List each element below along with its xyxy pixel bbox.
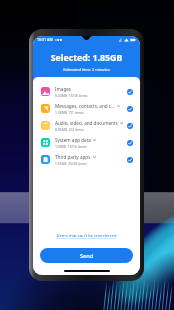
button[interactable]: Audio, video, and documents (33, 117, 140, 134)
button[interactable]: Images (33, 83, 140, 100)
button[interactable]: Items that can't be transferred (33, 233, 140, 239)
staticText: Images (55, 86, 72, 92)
staticText: System app data (55, 137, 91, 143)
button[interactable]: Selected (127, 157, 133, 163)
staticText: 8.85MB 2/2 items (55, 127, 84, 132)
button[interactable]: Selected (127, 89, 133, 95)
button[interactable]: Selected (127, 106, 133, 112)
staticText: Audio, video, and documents (55, 120, 118, 126)
button[interactable]: Send (40, 248, 133, 263)
button[interactable]: Selected (127, 123, 133, 129)
staticText: 10:01 AM (37, 37, 53, 42)
staticText: Items that can't be transferred (56, 233, 117, 239)
staticText: Messages, contacts, and c... (55, 103, 115, 109)
staticText: 1.69GB 25/28 items (55, 161, 87, 166)
staticText: Send (80, 252, 94, 259)
button[interactable]: System app data (33, 134, 140, 151)
staticText: Selected: 1.85GB (33, 52, 140, 64)
button[interactable]: Messages, contacts, and c... (33, 100, 140, 117)
staticText: 1.38MB 7/7 items (55, 110, 84, 115)
staticText: 5.24MB 16/18 items (55, 93, 88, 98)
staticText: Third party apps (55, 154, 91, 160)
button[interactable]: Selected (127, 140, 133, 146)
button[interactable]: Third party apps (33, 151, 140, 168)
staticText: Estimated time: 2 minutes (33, 67, 140, 72)
staticText: 129MB 10/16 items (55, 144, 87, 149)
